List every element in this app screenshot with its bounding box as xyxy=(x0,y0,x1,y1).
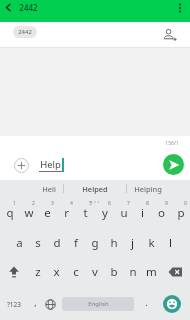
staticText: 3 xyxy=(51,200,54,207)
button[interactable]: d xyxy=(47,229,66,256)
staticText: , xyxy=(34,296,37,308)
button[interactable]: w xyxy=(19,197,38,229)
button[interactable]: a xyxy=(10,229,28,256)
staticText: o xyxy=(158,205,165,221)
staticText: ?123 xyxy=(7,300,21,309)
button[interactable]: x xyxy=(47,256,66,288)
button[interactable]: q xyxy=(0,197,19,229)
button[interactable]: j xyxy=(123,229,142,256)
staticText: 1 xyxy=(13,200,16,207)
staticText: m xyxy=(146,264,157,280)
staticText: w xyxy=(24,205,34,221)
staticText: j xyxy=(131,235,134,251)
staticText: k xyxy=(148,235,155,251)
button[interactable]: ?123 xyxy=(0,288,28,320)
staticText: n xyxy=(129,264,137,280)
staticText: 6 xyxy=(108,200,111,207)
staticText: 2442 xyxy=(19,2,38,13)
button[interactable]: o xyxy=(152,197,171,229)
button[interactable]: b xyxy=(104,256,123,288)
button[interactable] xyxy=(163,154,184,175)
staticText: p xyxy=(177,205,185,221)
staticText: i xyxy=(141,205,144,221)
button[interactable]: Hell xyxy=(0,180,63,197)
button[interactable]: 2442 xyxy=(13,26,37,38)
button[interactable]: p xyxy=(171,197,190,229)
staticText: English xyxy=(88,300,109,308)
staticText: 0 xyxy=(184,200,187,207)
staticText: 9 xyxy=(165,200,168,207)
button[interactable]: n xyxy=(123,256,142,288)
button[interactable]: English xyxy=(62,297,134,311)
button[interactable] xyxy=(42,288,58,320)
staticText: g xyxy=(91,235,99,251)
staticText: u xyxy=(120,205,128,221)
staticText: r xyxy=(64,205,69,221)
button[interactable]: s xyxy=(28,229,47,256)
staticText: t xyxy=(83,205,88,221)
button[interactable]: e xyxy=(38,197,57,229)
button[interactable] xyxy=(0,0,16,15)
staticText: Helped xyxy=(82,184,108,194)
button[interactable]: r xyxy=(57,197,76,229)
button[interactable]: y xyxy=(95,197,114,229)
button[interactable]: Helping xyxy=(127,180,190,197)
staticText: Hell xyxy=(42,184,56,194)
staticText: Help xyxy=(40,158,61,171)
staticText: a xyxy=(16,235,23,251)
staticText: z xyxy=(35,264,41,280)
button[interactable] xyxy=(0,256,28,288)
button[interactable]: t xyxy=(76,197,95,229)
staticText: b xyxy=(110,264,118,280)
staticText: d xyxy=(53,235,61,251)
staticText: h xyxy=(110,235,118,251)
button[interactable]: g xyxy=(85,229,104,256)
button[interactable]: l xyxy=(161,229,180,256)
button[interactable]: m xyxy=(142,256,161,288)
staticText: e xyxy=(44,205,51,221)
staticText: 5 xyxy=(89,200,92,207)
button[interactable]: . xyxy=(138,288,154,320)
staticText: y xyxy=(102,205,108,221)
button[interactable] xyxy=(13,157,29,173)
button[interactable] xyxy=(172,0,188,15)
staticText: 2442 xyxy=(18,28,32,36)
button[interactable] xyxy=(162,27,177,42)
button[interactable]: u xyxy=(114,197,133,229)
staticText: 156/1 xyxy=(165,140,179,147)
staticText: s xyxy=(35,235,41,251)
staticText: 7 xyxy=(127,200,130,207)
button[interactable]: v xyxy=(85,256,104,288)
staticText: f xyxy=(74,235,78,251)
staticText: v xyxy=(92,264,98,280)
button[interactable] xyxy=(161,256,190,288)
staticText: x xyxy=(53,264,60,280)
button[interactable]: h xyxy=(104,229,123,256)
button[interactable]: c xyxy=(66,256,85,288)
staticText: Helping xyxy=(134,184,162,194)
button[interactable]: z xyxy=(28,256,47,288)
staticText: . xyxy=(145,296,148,308)
button[interactable]: Helped xyxy=(64,180,126,197)
button[interactable] xyxy=(154,288,190,320)
staticText: c xyxy=(73,264,79,280)
button[interactable]: i xyxy=(133,197,152,229)
button[interactable]: , xyxy=(28,288,42,320)
button[interactable]: k xyxy=(142,229,161,256)
staticText: 4 xyxy=(70,200,73,207)
staticText: q xyxy=(6,205,14,221)
button[interactable]: f xyxy=(66,229,85,256)
staticText: 2 xyxy=(32,200,35,207)
staticText: l xyxy=(169,235,172,251)
staticText: 8 xyxy=(146,200,149,207)
